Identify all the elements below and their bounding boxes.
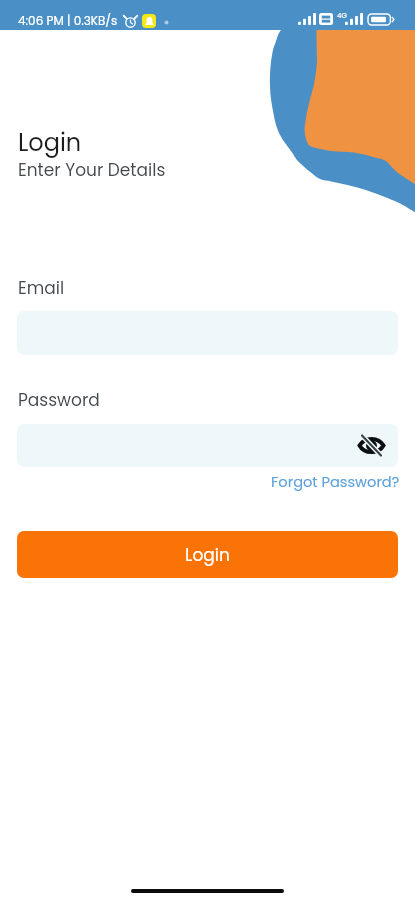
staticText: 4G (337, 11, 347, 21)
staticText: Login (185, 543, 230, 567)
button[interactable]: Show password (350, 424, 392, 467)
staticText: Email (18, 276, 65, 300)
button[interactable]: Login (17, 531, 398, 578)
staticText: Password (18, 388, 100, 412)
button[interactable]: Forgot Password? (17, 472, 400, 492)
staticText: Login (18, 126, 82, 160)
staticText: Forgot Password? (271, 472, 400, 492)
button[interactable]: Show password (17, 424, 398, 467)
staticText: Enter Your Details (18, 158, 166, 182)
staticText: 4:06 PM | 0.3KB/s (18, 12, 118, 29)
